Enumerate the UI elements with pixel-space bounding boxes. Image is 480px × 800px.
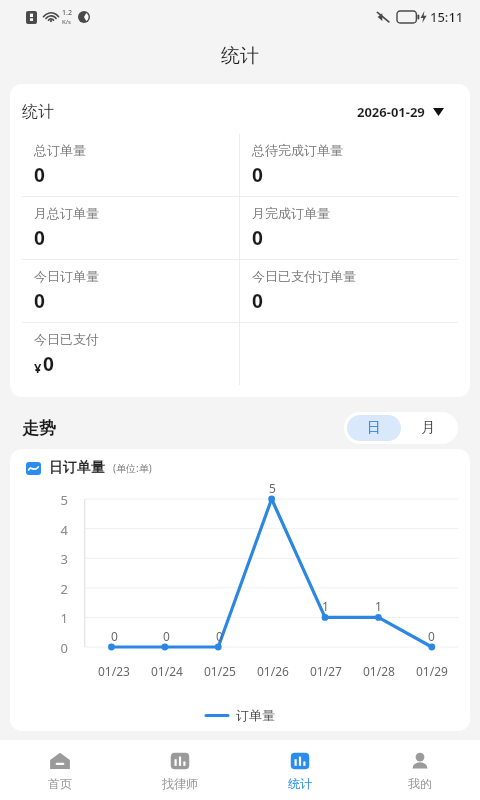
- button[interactable]: 总待完成订单量: [240, 134, 458, 196]
- staticText: 01/29: [416, 663, 448, 679]
- staticText: 首页: [48, 776, 72, 791]
- staticText: 0: [43, 351, 54, 377]
- staticText: 2026-01-29: [357, 103, 425, 121]
- staticText: 日: [367, 419, 381, 437]
- button[interactable]: 总订单量: [22, 134, 239, 196]
- staticText: 日订单量: [49, 459, 105, 477]
- staticText: 0: [163, 628, 170, 644]
- button[interactable]: 统计: [240, 740, 360, 800]
- staticText: 月: [421, 419, 435, 437]
- staticText: 我的: [408, 776, 432, 791]
- staticText: 月完成订单量: [252, 205, 330, 221]
- staticText: 2: [10, 580, 68, 598]
- staticText: 今日订单量: [34, 268, 99, 284]
- staticText: 月总订单量: [34, 205, 99, 221]
- other: 首页: [49, 750, 71, 772]
- staticText: 01/28: [363, 663, 395, 679]
- button[interactable]: 今日订单量: [22, 260, 239, 322]
- staticText: 1.2: [62, 8, 72, 18]
- staticText: 5: [269, 480, 276, 496]
- staticText: 1: [375, 598, 382, 614]
- staticText: 0: [111, 628, 118, 644]
- staticText: 01/25: [204, 663, 236, 679]
- staticText: 5: [10, 491, 68, 509]
- staticText: 0: [34, 288, 45, 314]
- other: 统计: [289, 750, 311, 772]
- staticText: 0: [34, 225, 45, 251]
- staticText: 0: [252, 225, 263, 251]
- staticText: ¥: [34, 359, 42, 377]
- button[interactable]: 今日已支付订单量: [240, 260, 458, 322]
- staticText: 0: [216, 628, 223, 644]
- other: 我的: [409, 750, 431, 772]
- staticText: 01/23: [98, 663, 130, 679]
- staticText: 总待完成订单量: [252, 142, 343, 158]
- button[interactable]: 首页: [0, 740, 120, 800]
- button[interactable]: 找律师: [120, 740, 240, 800]
- staticText: 01/26: [257, 663, 289, 679]
- staticText: 统计: [288, 776, 312, 791]
- staticText: 0: [34, 162, 45, 188]
- staticText: 统计: [22, 102, 54, 122]
- staticText: 3: [10, 550, 68, 568]
- staticText: 今日已支付: [34, 331, 99, 347]
- button[interactable]: 月总订单量: [22, 197, 239, 259]
- staticText: 15:11: [430, 8, 464, 26]
- staticText: 统计: [221, 44, 259, 68]
- staticText: 总订单量: [34, 142, 86, 158]
- button[interactable]: 日: [347, 415, 401, 441]
- button[interactable]: 我的: [360, 740, 480, 800]
- staticText: 4: [10, 521, 68, 539]
- staticText: K/s: [62, 18, 72, 26]
- staticText: 01/24: [151, 663, 183, 679]
- staticText: 1: [322, 598, 329, 614]
- button[interactable]: 2026-01-29: [343, 98, 458, 126]
- button[interactable]: 月完成订单量: [240, 197, 458, 259]
- staticText: 今日已支付订单量: [252, 268, 356, 284]
- button[interactable]: 今日已支付: [22, 323, 239, 385]
- button[interactable]: 月: [401, 415, 455, 441]
- staticText: 走势: [22, 418, 56, 439]
- staticText: 订单量: [236, 707, 275, 723]
- staticText: 01/27: [310, 663, 342, 679]
- staticText: (单位:单): [113, 461, 152, 475]
- other: 找律师: [169, 750, 191, 772]
- staticText: 1: [10, 609, 68, 627]
- staticText: 找律师: [162, 776, 198, 791]
- staticText: 0: [428, 628, 435, 644]
- staticText: 0: [252, 288, 263, 314]
- staticText: 0: [252, 162, 263, 188]
- staticText: 0: [10, 639, 68, 657]
